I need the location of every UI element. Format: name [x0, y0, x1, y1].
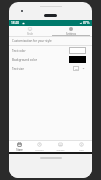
staticText: Settings — [66, 32, 76, 35]
button[interactable]: Change text size — [81, 66, 86, 71]
button[interactable]: Info — [71, 141, 92, 152]
button[interactable]: Style — [9, 26, 50, 35]
staticText: Text size — [12, 67, 73, 71]
button[interactable]: History — [29, 141, 50, 152]
staticText: History — [35, 148, 44, 151]
staticText: Style — [27, 32, 33, 35]
button[interactable]: Pick text color — [69, 47, 86, 54]
button[interactable]: Text size — [9, 64, 92, 73]
button[interactable]: Gallery — [50, 141, 71, 152]
staticText: Gallery — [56, 148, 65, 151]
button[interactable]: 16 — [73, 66, 79, 71]
button[interactable]: Text color — [9, 46, 92, 55]
staticText: 18:20 — [11, 21, 20, 25]
staticText: 16 — [75, 67, 78, 70]
button[interactable]: Settings — [50, 26, 92, 35]
button[interactable]: Background color — [9, 55, 92, 64]
staticText: 87% — [83, 21, 90, 25]
button[interactable]: Store — [9, 141, 29, 152]
staticText: Store — [16, 148, 23, 151]
staticText: Customisation for your style — [12, 39, 52, 43]
staticText: Text color — [12, 49, 69, 53]
staticText: Info — [79, 148, 84, 151]
staticText: Background color — [12, 58, 69, 62]
